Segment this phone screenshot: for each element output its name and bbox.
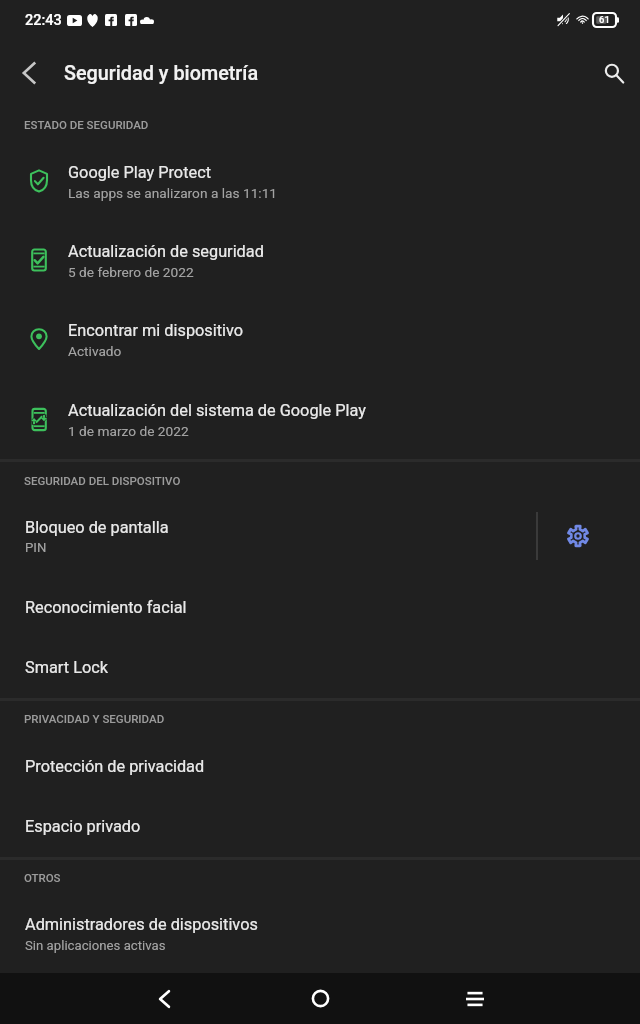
staticText: 5 de febrero de 2022: [68, 264, 194, 280]
staticText: 22:43: [25, 12, 62, 29]
button[interactable]: Search: [590, 49, 638, 97]
staticText: SEGURIDAD DEL DISPOSITIVO: [24, 474, 181, 487]
button[interactable]: Encontrar mi dispositivo: [0, 291, 640, 370]
button[interactable]: Smart Lock: [0, 637, 640, 697]
button[interactable]: Back: [5, 49, 53, 97]
button[interactable]: Protección de privacidad: [0, 736, 640, 796]
staticText: Las apps se analizaron a las 11:11: [68, 185, 278, 201]
button[interactable]: Screen lock settings: [538, 488, 616, 567]
staticText: Google Play Protect: [68, 163, 212, 182]
staticText: Administradores de dispositivos: [25, 915, 258, 934]
staticText: PRIVACIDAD Y SEGURIDAD: [24, 712, 165, 725]
staticText: Reconocimiento facial: [25, 598, 187, 617]
staticText: Encontrar mi dispositivo: [68, 321, 244, 340]
staticText: Protección de privacidad: [25, 757, 205, 776]
button[interactable]: Actualización del sistema de Google Play: [0, 371, 640, 450]
staticText: 61: [599, 14, 610, 25]
button[interactable]: Actualización de seguridad: [0, 212, 640, 291]
staticText: Espacio privado: [25, 817, 141, 836]
staticText: Seguridad y biometría: [64, 62, 259, 85]
staticText: Actualización del sistema de Google Play: [68, 401, 366, 420]
button[interactable]: Administradores de dispositivos: [0, 885, 640, 964]
staticText: Bloqueo de pantalla: [25, 518, 169, 537]
button[interactable]: Home: [296, 973, 344, 1024]
button[interactable]: Back: [140, 973, 188, 1024]
staticText: Smart Lock: [25, 658, 108, 677]
button[interactable]: Google Play Protect: [0, 133, 640, 212]
staticText: Sin aplicaciones activas: [25, 938, 166, 953]
staticText: OTROS: [24, 871, 61, 884]
button[interactable]: Bloqueo de pantalla: [0, 488, 537, 567]
button[interactable]: Recent apps: [451, 973, 499, 1024]
button[interactable]: Reconocimiento facial: [0, 577, 640, 637]
staticText: Actualización de seguridad: [68, 242, 264, 261]
staticText: Activado: [68, 343, 122, 359]
staticText: PIN: [25, 540, 47, 555]
button[interactable]: Espacio privado: [0, 796, 640, 856]
staticText: ESTADO DE SEGURIDAD: [24, 118, 149, 131]
staticText: 1 de marzo de 2022: [68, 423, 189, 439]
